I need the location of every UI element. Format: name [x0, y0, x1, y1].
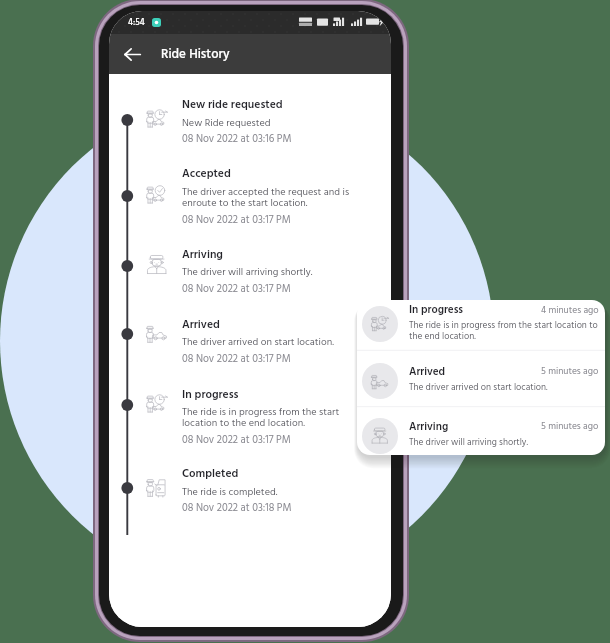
staticText: The driver will arriving shortly.: [409, 435, 601, 450]
button[interactable]: [109, 310, 391, 372]
button[interactable]: [109, 459, 391, 521]
staticText: 08 Nov 2022 at 03:17 PM: [182, 351, 291, 368]
staticText: 08 Nov 2022 at 03:16 PM: [182, 131, 292, 148]
staticText: The ride is in progress from the start l…: [182, 404, 340, 432]
button[interactable]: [357, 412, 605, 455]
staticText: The driver accepted the request and is e…: [182, 184, 350, 212]
button[interactable]: [109, 159, 391, 231]
staticText: The driver arrived on start location.: [182, 334, 334, 350]
staticText: 08 Nov 2022 at 03:18 PM: [182, 500, 292, 517]
staticText: In progress: [182, 386, 239, 404]
staticText: Arriving: [182, 246, 223, 264]
staticText: 08 Nov 2022 at 03:17 PM: [182, 432, 291, 449]
staticText: Arriving: [409, 418, 449, 436]
staticText: 5 minutes ago: [541, 364, 603, 379]
staticText: The driver will arriving shortly.: [182, 264, 313, 280]
button[interactable]: [357, 300, 605, 348]
staticText: New Ride requested: [182, 115, 271, 131]
staticText: The ride is in progress from the start l…: [409, 318, 601, 344]
button[interactable]: Back: [119, 41, 145, 67]
staticText: Completed: [182, 465, 239, 483]
staticText: Ride History: [161, 44, 230, 65]
staticText: Arrived: [182, 316, 220, 334]
staticText: In progress: [409, 301, 464, 319]
button[interactable]: [357, 357, 605, 405]
staticText: The ride is completed.: [182, 484, 278, 500]
button[interactable]: [109, 90, 391, 152]
staticText: 4 minutes ago: [541, 303, 603, 318]
staticText: New ride requested: [182, 96, 283, 114]
staticText: 4:54: [128, 16, 145, 30]
staticText: The driver arrived on start location.: [409, 380, 601, 395]
staticText: 08 Nov 2022 at 03:17 PM: [182, 281, 291, 298]
button[interactable]: [109, 240, 391, 302]
staticText: Accepted: [182, 165, 231, 183]
staticText: Arrived: [409, 363, 446, 381]
staticText: 08 Nov 2022 at 03:17 PM: [182, 212, 291, 229]
staticText: 5 minutes ago: [541, 419, 603, 434]
button[interactable]: [109, 380, 391, 452]
